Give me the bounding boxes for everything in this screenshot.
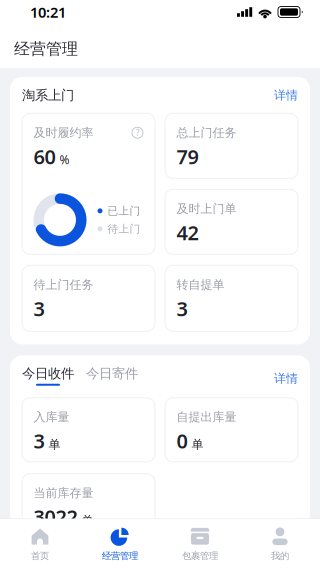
staticText: 今日收件: [22, 365, 74, 382]
staticText: 单: [48, 437, 60, 452]
staticText: 当前库存量: [33, 486, 93, 500]
staticText: 42: [176, 219, 198, 246]
staticText: 详情: [274, 371, 298, 386]
staticText: 首页: [31, 550, 49, 562]
staticText: 及时上门单: [176, 201, 236, 216]
staticText: %: [59, 151, 69, 167]
button[interactable]: 详情: [274, 371, 298, 386]
button[interactable]: 首页: [0, 519, 80, 568]
staticText: 自提出库量: [176, 410, 236, 424]
staticText: 今日寄件: [86, 365, 138, 382]
staticText: 详情: [274, 88, 298, 102]
staticText: 包裹管理: [182, 550, 218, 562]
staticText: 已上门: [107, 204, 140, 217]
button[interactable]: 我的: [240, 519, 320, 568]
button[interactable]: 今日寄件: [86, 365, 138, 386]
staticText: ?: [136, 127, 139, 138]
button[interactable]: 经营管理: [80, 519, 160, 568]
button[interactable]: 今日收件: [22, 365, 74, 386]
staticText: 79: [176, 143, 198, 170]
staticText: 单: [191, 437, 203, 452]
staticText: 10:21: [30, 2, 66, 22]
staticText: 0: [176, 427, 187, 454]
staticText: 转自提单: [176, 277, 224, 292]
button[interactable]: 详情: [274, 88, 298, 102]
staticText: 待上门任务: [33, 277, 93, 292]
staticText: 待上门: [107, 222, 140, 235]
staticText: 经营管理: [14, 39, 78, 59]
staticText: 总上门任务: [176, 125, 236, 140]
staticText: 入库量: [33, 410, 69, 424]
staticText: 3: [176, 295, 187, 322]
staticText: 3: [33, 427, 44, 454]
staticText: 及时履约率: [33, 125, 93, 140]
staticText: 淘系上门: [22, 87, 74, 103]
staticText: 3022: [33, 503, 77, 530]
staticText: 我的: [271, 550, 289, 562]
staticText: 单: [81, 513, 93, 528]
button[interactable]: 包裹管理: [160, 519, 240, 568]
staticText: 60: [33, 143, 55, 170]
staticText: 3: [33, 295, 44, 322]
staticText: 经营管理: [102, 550, 138, 562]
